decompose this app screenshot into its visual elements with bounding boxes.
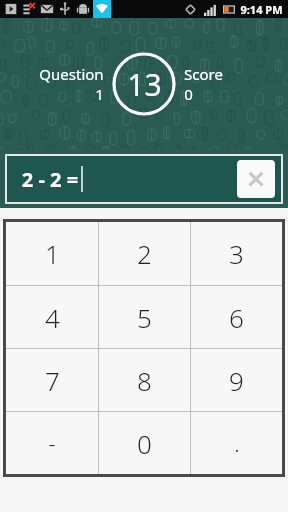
button[interactable]: 6 (191, 286, 282, 348)
button[interactable]: 8 (99, 349, 190, 411)
staticText: 0 (184, 84, 193, 104)
staticText: 7 (45, 363, 60, 398)
staticText: 5 (137, 300, 152, 335)
button[interactable]: 2 (99, 222, 190, 285)
staticText: 4 (45, 300, 60, 335)
staticText: Question (39, 64, 104, 84)
staticText: 9 (229, 363, 244, 398)
button[interactable]: 7 (6, 349, 98, 411)
button[interactable]: 0 (99, 412, 190, 474)
button[interactable]: - (6, 412, 98, 474)
staticText: 1 (45, 236, 60, 271)
staticText: 2 - 2 = (19, 166, 81, 193)
staticText: 3 (229, 236, 244, 271)
button[interactable]: 9 (191, 349, 282, 411)
staticText: Score (184, 64, 223, 84)
staticText: 2 (137, 236, 152, 271)
staticText: 0 (137, 426, 152, 461)
staticText: . (234, 428, 240, 458)
button[interactable]: 4 (6, 286, 98, 348)
button[interactable]: 3 (191, 222, 282, 285)
button[interactable]: . (191, 412, 282, 474)
button[interactable]: Clear (237, 160, 275, 198)
staticText: 6 (229, 300, 244, 335)
staticText: - (48, 428, 56, 458)
staticText: 13 (127, 64, 162, 105)
staticText: 8 (137, 363, 152, 398)
button[interactable]: 5 (99, 286, 190, 348)
staticText: 1 (95, 84, 104, 104)
button[interactable]: 1 (6, 222, 98, 285)
staticText: 9:14 PM (240, 2, 283, 17)
